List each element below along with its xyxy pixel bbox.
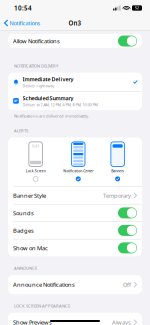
staticText: NOTIFICATION DELIVERY <box>14 63 58 69</box>
button[interactable]: Sounds <box>8 204 142 221</box>
button[interactable]: Show on Mac <box>8 239 142 256</box>
staticText: 0:41 <box>32 144 39 148</box>
staticText: 52 <box>135 6 139 10</box>
button[interactable]: Show Previews <box>8 313 142 325</box>
staticText: LOCK SCREEN APPEARANCE <box>14 303 70 309</box>
staticText: On3 <box>68 19 81 27</box>
staticText: Sounds <box>13 209 34 217</box>
staticText: Badges <box>13 226 34 234</box>
button[interactable]: Notification Center <box>63 142 93 182</box>
staticText: Announce Notifications <box>13 281 75 288</box>
staticText: Notification Center <box>63 169 93 173</box>
button[interactable]: Notifications <box>0 17 40 29</box>
staticText: Show Previews <box>13 318 52 325</box>
staticText: Temporary <box>103 191 131 199</box>
button[interactable]: Banners <box>111 142 124 182</box>
staticText: Banner Style <box>13 191 46 199</box>
staticText: Deliver right away <box>22 83 54 88</box>
staticText: ALERTS <box>14 128 28 133</box>
staticText: Off <box>123 281 131 288</box>
staticText: ANNOUNCE <box>14 265 37 271</box>
button[interactable]: Allow Notifications <box>8 34 142 48</box>
button[interactable]: Scheduled Summary <box>8 92 142 110</box>
staticText: Allow Notifications <box>13 37 60 45</box>
staticText: Always <box>112 318 131 325</box>
staticText: Notifications <box>9 19 40 27</box>
button[interactable]: Badges <box>8 222 142 239</box>
button[interactable]: 0:41 <box>26 142 46 182</box>
staticText: Banners <box>111 169 124 173</box>
staticText: Notifications are delivered immediately. <box>14 113 89 119</box>
button[interactable]: Immediate Delivery <box>8 73 142 91</box>
staticText: Deliver at 7 AM, 12 PM, 4 PM, 8 PM, 10:3… <box>22 102 97 107</box>
staticText: Immediate Delivery <box>22 75 73 83</box>
staticText: Scheduled Summary <box>22 94 73 102</box>
button[interactable]: Banner Style <box>8 187 142 204</box>
staticText: 10:54 <box>14 4 32 12</box>
button[interactable]: Announce Notifications <box>8 275 142 294</box>
staticText: Lock Screen <box>26 169 46 173</box>
staticText: Show on Mac <box>13 244 48 252</box>
